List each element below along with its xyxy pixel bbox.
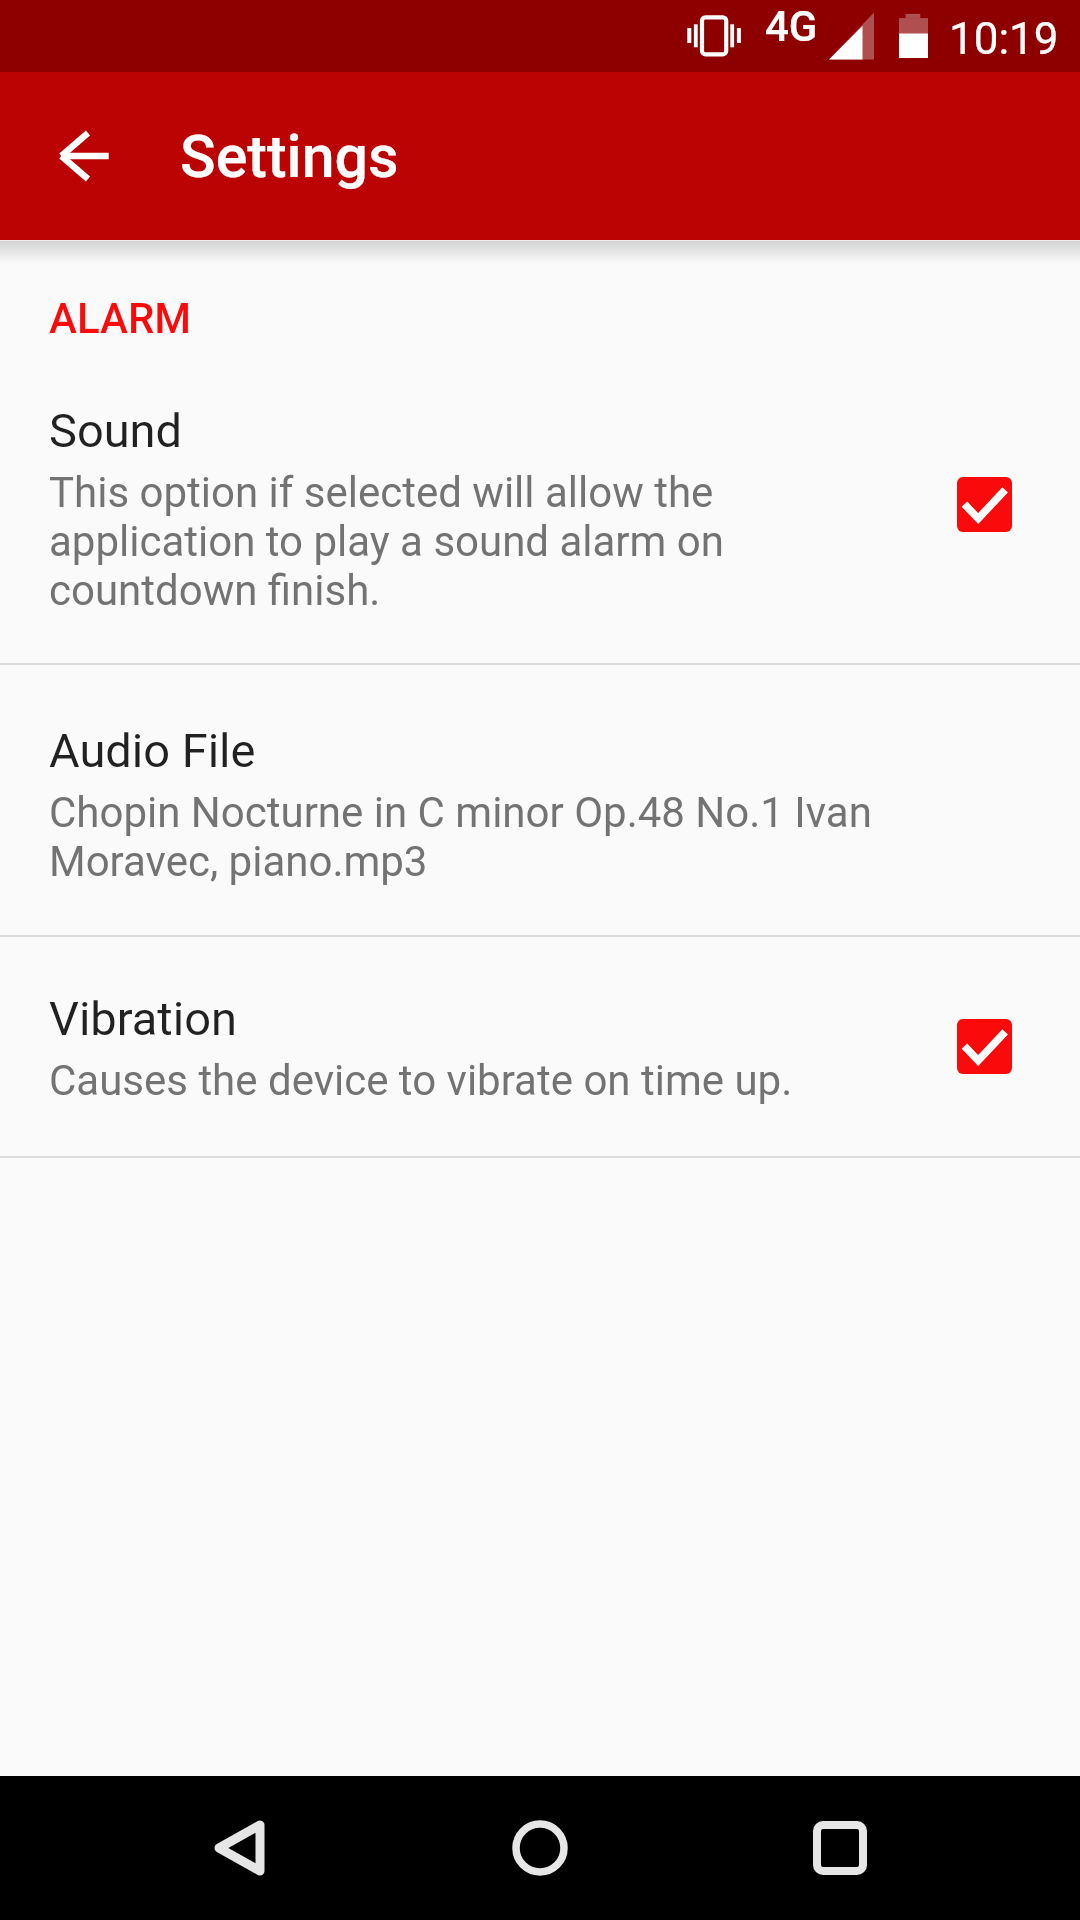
staticText: Chopin Nocturne in C minor Op.48 No.1 Iv… xyxy=(49,788,901,886)
button[interactable]: Sound xyxy=(0,345,1080,663)
button[interactable]: Home xyxy=(450,1776,630,1920)
button[interactable]: Toggle Sound xyxy=(957,477,1012,532)
staticText: 10:19 xyxy=(949,13,1059,65)
staticText: Vibration xyxy=(49,991,237,1046)
staticText: Sound xyxy=(49,403,183,458)
staticText: 4G xyxy=(765,2,818,51)
staticText: Causes the device to vibrate on time up. xyxy=(49,1056,793,1105)
button[interactable]: Audio File xyxy=(0,665,1080,935)
button[interactable]: Toggle Vibration xyxy=(957,1019,1012,1074)
button[interactable]: Back xyxy=(37,108,133,204)
staticText: ALARM xyxy=(49,294,1080,343)
button[interactable]: Vibration xyxy=(0,937,1080,1156)
button[interactable]: Recent apps xyxy=(750,1776,930,1920)
staticText: This option if selected will allow the a… xyxy=(49,468,901,615)
staticText: Audio File xyxy=(49,723,256,778)
staticText: Settings xyxy=(180,122,399,191)
button[interactable]: Back xyxy=(150,1776,330,1920)
